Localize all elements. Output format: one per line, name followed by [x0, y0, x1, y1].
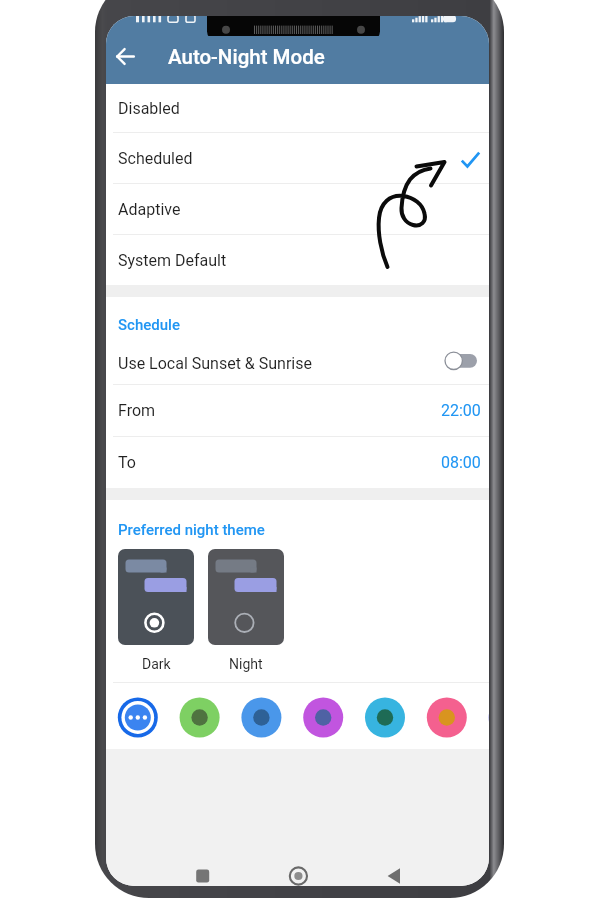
button[interactable]: Accent colour	[422, 697, 464, 739]
staticText: Use Local Sunset & Sunrise	[118, 354, 312, 373]
staticText: Preferred night theme	[118, 521, 265, 539]
button[interactable]: Home	[278, 860, 318, 886]
staticText: 22:00	[441, 401, 481, 420]
button[interactable]: Accent colour	[361, 697, 403, 739]
button[interactable]: Disabled	[106, 84, 489, 132]
button[interactable]: Night	[208, 549, 284, 682]
staticText: Schedule	[118, 316, 180, 334]
staticText: Adaptive	[118, 200, 181, 219]
button[interactable]: System Default	[106, 235, 489, 285]
button[interactable]: Accent colour	[300, 697, 342, 739]
button[interactable]: Adaptive	[106, 184, 489, 234]
button[interactable]: From	[106, 385, 489, 436]
button[interactable]: Back	[106, 37, 145, 76]
button[interactable]: Accent colour	[239, 697, 281, 739]
button[interactable]: More colors	[117, 697, 159, 739]
button[interactable]: Back	[374, 860, 414, 886]
staticText: Dark	[142, 656, 171, 672]
staticText: Disabled	[118, 99, 180, 118]
staticText: Auto-Night Mode	[168, 45, 325, 69]
button[interactable]: Recents	[182, 860, 222, 886]
staticText: Scheduled	[118, 149, 193, 168]
staticText: To	[118, 453, 136, 472]
staticText: System Default	[118, 251, 227, 270]
button[interactable]: Accent colour	[178, 697, 220, 739]
button[interactable]: Scheduled	[106, 133, 489, 183]
button[interactable]: Dark	[118, 549, 194, 682]
staticText: Night	[229, 656, 263, 672]
button[interactable]: To	[106, 437, 489, 488]
button[interactable]: Use Local Sunset & Sunrise	[106, 342, 489, 384]
staticText: 08:00	[441, 453, 481, 472]
staticText: From	[118, 401, 156, 420]
